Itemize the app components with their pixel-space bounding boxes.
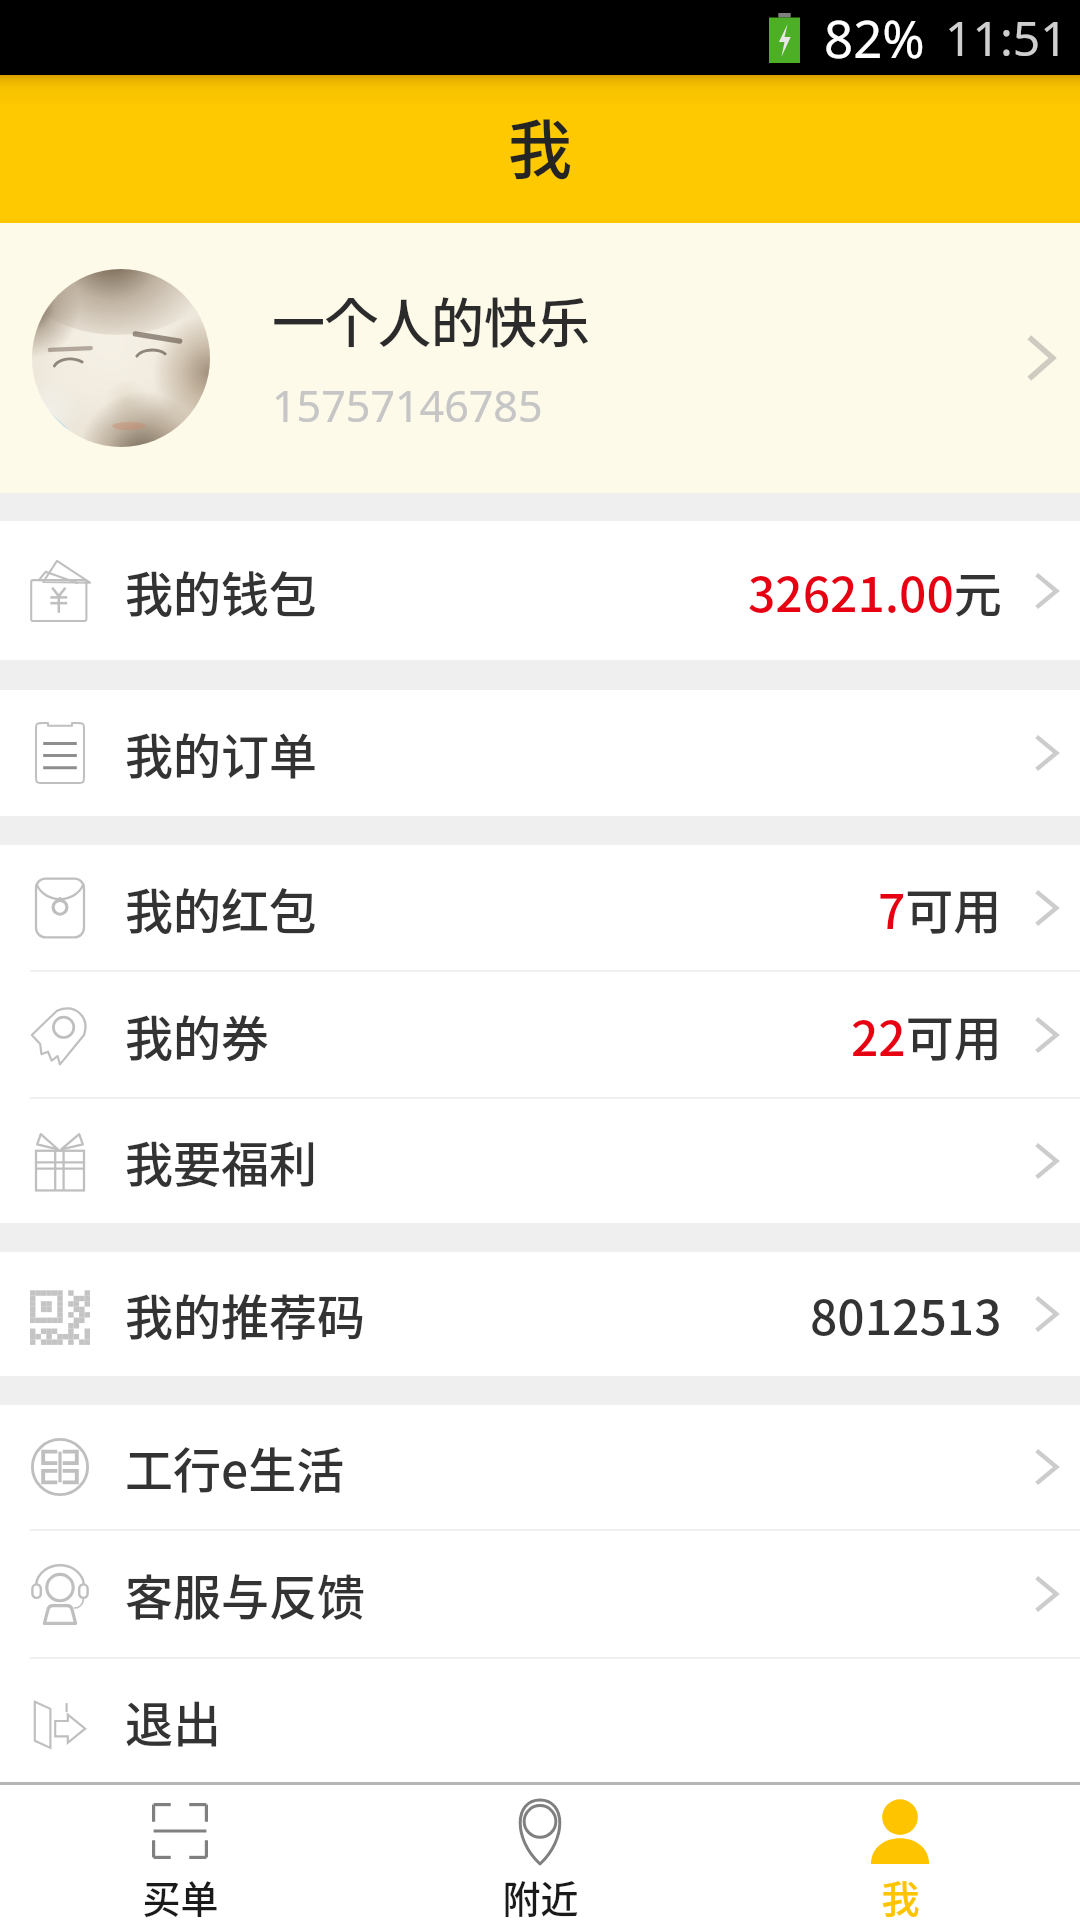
button[interactable]: 我: [720, 1785, 1080, 1920]
staticText: 买单: [142, 1869, 219, 1920]
staticText: 我的券: [125, 1000, 270, 1070]
button[interactable]: 退出: [0, 1659, 1080, 1782]
staticText: 我的推荐码: [125, 1279, 366, 1349]
staticText: 我: [881, 1869, 920, 1920]
staticText: 15757146785: [272, 376, 543, 435]
staticText: 我的红包: [125, 873, 318, 943]
staticText: 82%: [824, 3, 925, 72]
staticText: 退出: [125, 1686, 222, 1756]
button[interactable]: 我的红包: [0, 845, 1080, 970]
staticText: 我的钱包: [125, 556, 318, 626]
button[interactable]: 我的券: [0, 972, 1080, 1097]
button[interactable]: 我的订单: [0, 690, 1080, 816]
staticText: 附近: [502, 1869, 579, 1920]
staticText: 22可用: [851, 1000, 1002, 1070]
button[interactable]: 工行e生活: [0, 1405, 1080, 1529]
staticText: 我要福利: [125, 1126, 318, 1196]
staticText: 7可用: [878, 873, 1002, 943]
button[interactable]: 客服与反馈: [0, 1531, 1080, 1657]
staticText: 32621.00元: [748, 556, 1002, 626]
button[interactable]: 一个人的快乐: [0, 223, 1080, 493]
button[interactable]: 我的推荐码: [0, 1252, 1080, 1376]
button[interactable]: 买单: [0, 1785, 360, 1920]
button[interactable]: 我要福利: [0, 1099, 1080, 1223]
staticText: 11:51: [945, 5, 1068, 70]
staticText: 我: [508, 99, 572, 192]
staticText: 客服与反馈: [125, 1559, 366, 1629]
staticText: 一个人的快乐: [272, 282, 590, 359]
button[interactable]: 我的钱包: [0, 521, 1080, 660]
staticText: 工行e生活: [125, 1432, 345, 1502]
staticText: 8012513: [810, 1279, 1002, 1349]
staticText: 我的订单: [125, 718, 318, 788]
button[interactable]: 附近: [360, 1785, 720, 1920]
